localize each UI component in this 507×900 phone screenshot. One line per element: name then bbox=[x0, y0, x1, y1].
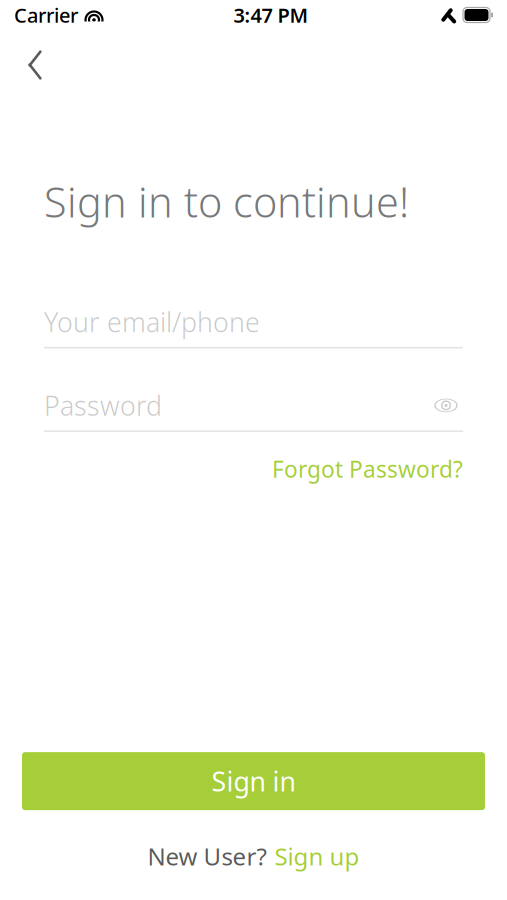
staticText: Sign in to continue! bbox=[44, 174, 409, 229]
staticText: Forgot Password? bbox=[272, 454, 463, 484]
staticText: New User? bbox=[147, 840, 266, 872]
staticText: 3:47 PM bbox=[233, 2, 308, 28]
staticText: Password bbox=[44, 388, 162, 423]
button[interactable]: Back bbox=[8, 42, 62, 88]
staticText: Sign up bbox=[274, 840, 359, 872]
button[interactable]: Forgot Password? bbox=[272, 454, 463, 484]
button[interactable]: Sign in bbox=[22, 752, 485, 810]
button[interactable]: Show password bbox=[429, 390, 463, 420]
staticText: Your email/phone bbox=[44, 304, 260, 340]
button[interactable]: Sign up bbox=[274, 840, 359, 872]
staticText: Carrier bbox=[14, 2, 78, 28]
staticText: Sign in bbox=[211, 763, 295, 799]
